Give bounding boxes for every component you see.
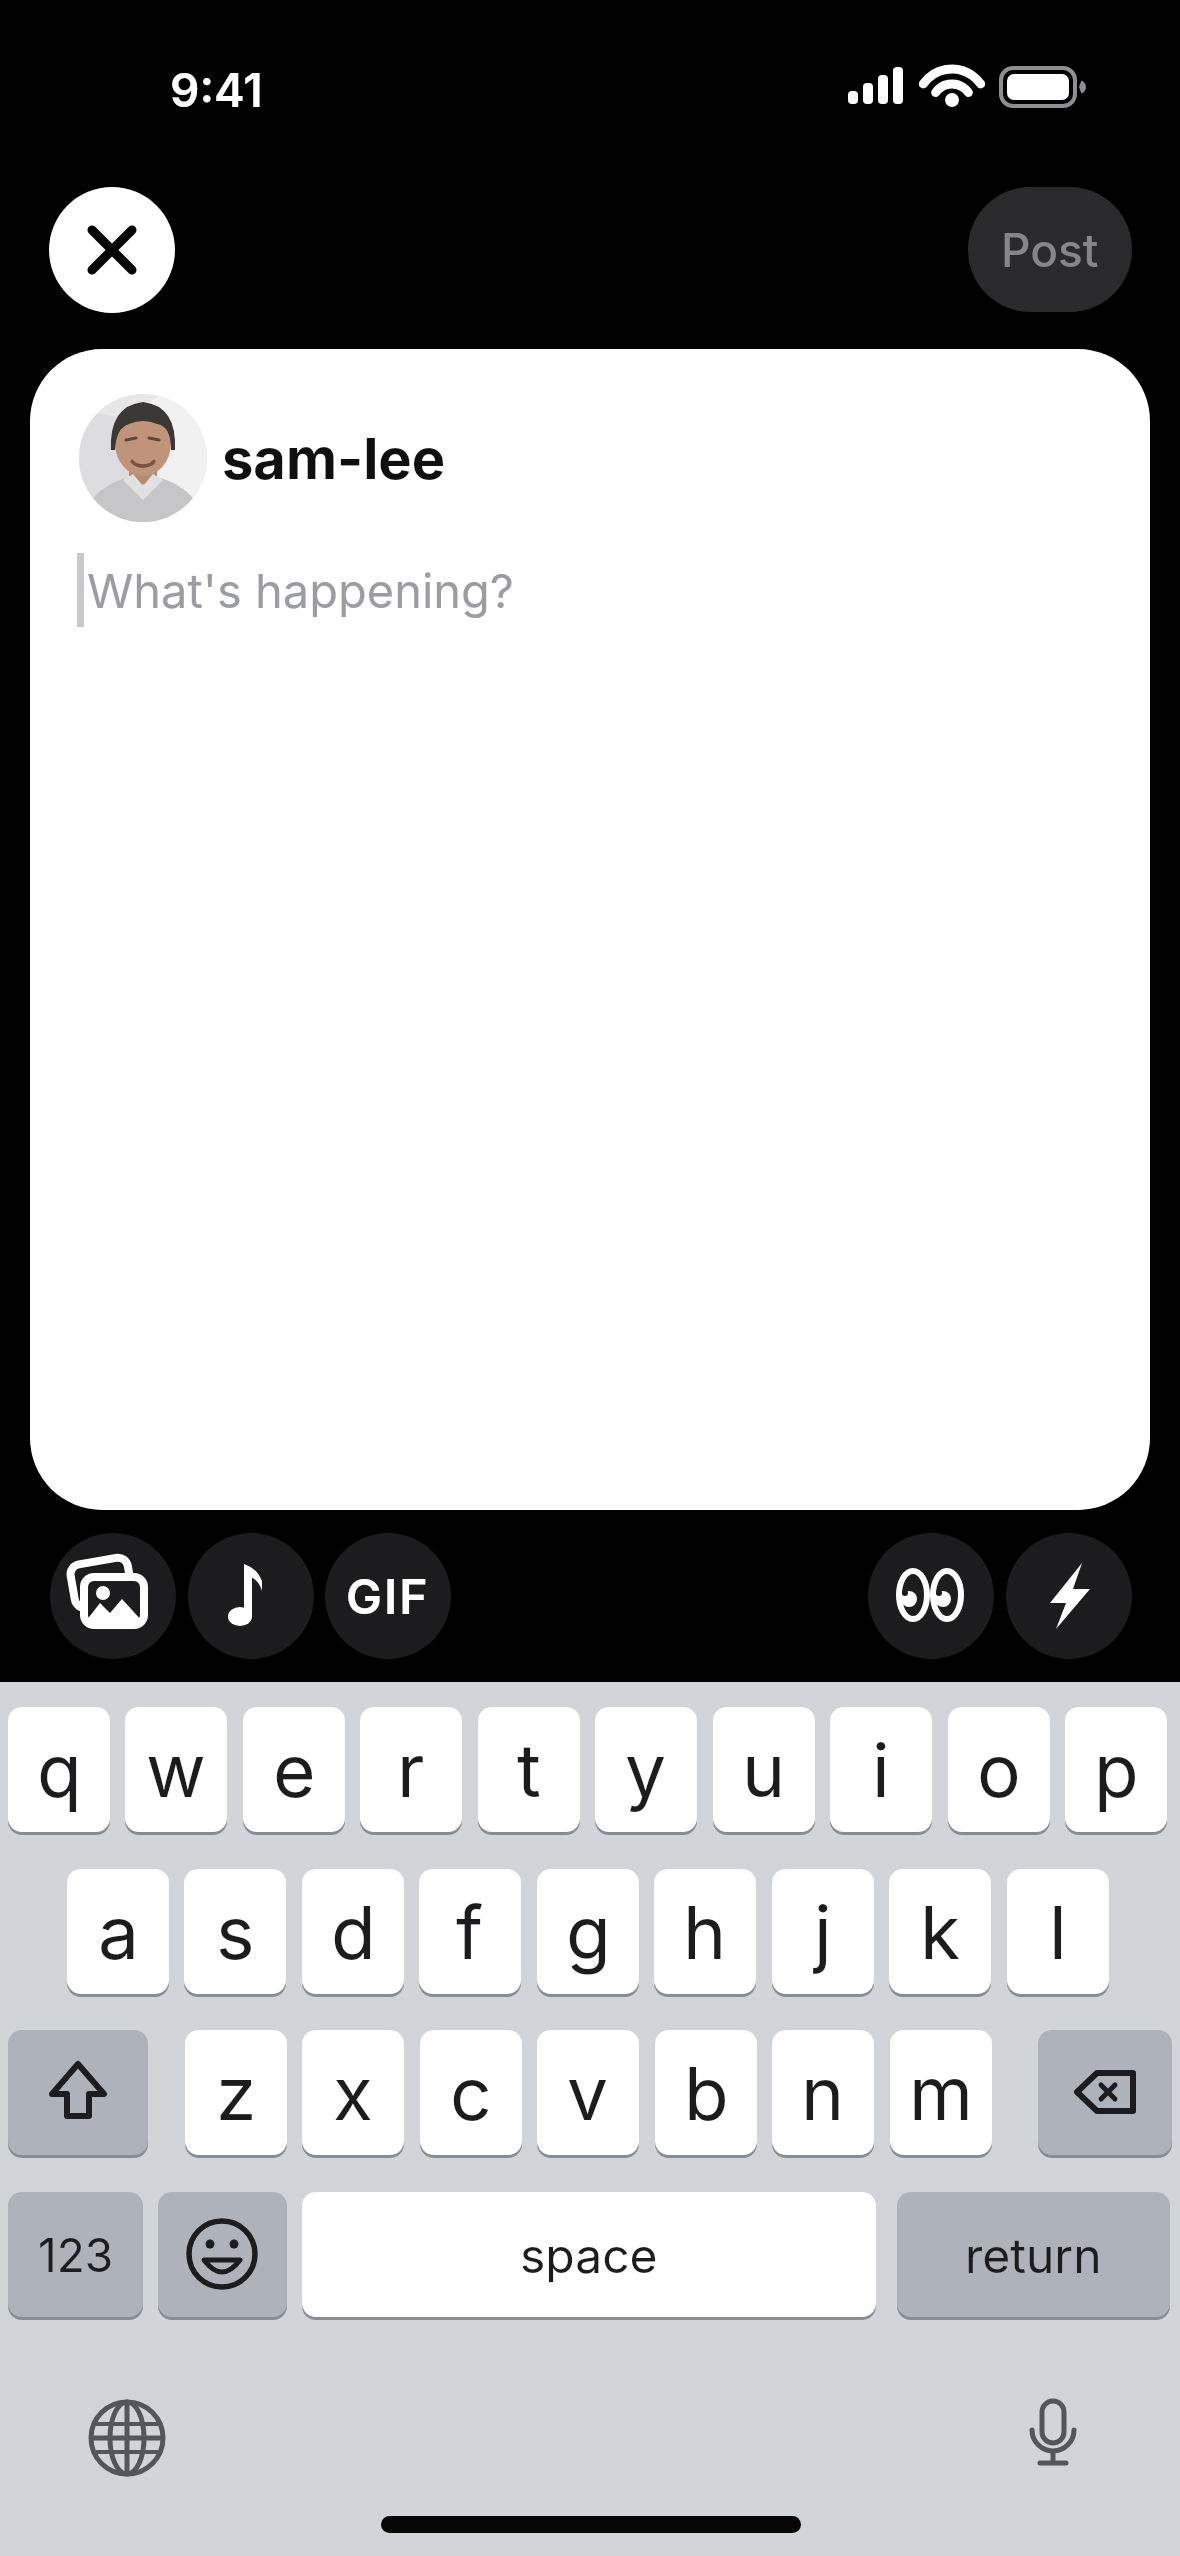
button[interactable]: u [713, 1707, 815, 1832]
staticText: w [146, 1726, 206, 1814]
button[interactable]: GIF [325, 1533, 451, 1659]
staticText: h [683, 1888, 727, 1976]
button[interactable] [1038, 2030, 1172, 2155]
button[interactable]: i [830, 1707, 932, 1832]
button[interactable]: return [897, 2192, 1170, 2317]
staticText: g [566, 1888, 611, 1976]
button[interactable]: z [185, 2030, 287, 2155]
button[interactable]: m [890, 2030, 992, 2155]
staticText: l [1049, 1888, 1067, 1976]
staticText: d [331, 1888, 376, 1976]
button[interactable]: h [654, 1869, 756, 1994]
button[interactable]: l [1007, 1869, 1109, 1994]
button[interactable]: y [595, 1707, 697, 1832]
button[interactable]: b [655, 2030, 757, 2155]
staticText: a [98, 1888, 139, 1976]
staticText: b [684, 2049, 729, 2137]
button[interactable]: j [772, 1869, 874, 1994]
staticText: v [567, 2049, 609, 2137]
button[interactable]: f [419, 1869, 521, 1994]
staticText: r [397, 1726, 425, 1814]
button[interactable]: n [772, 2030, 874, 2155]
button[interactable]: e [243, 1707, 345, 1832]
staticText: s [216, 1888, 255, 1976]
staticText: j [814, 1888, 832, 1976]
staticText: 123 [38, 2227, 114, 2283]
staticText: e [273, 1726, 316, 1814]
button[interactable]: w [125, 1707, 227, 1832]
button[interactable]: a [67, 1869, 169, 1994]
button[interactable] [868, 1533, 994, 1659]
staticText: sam-lee [222, 425, 446, 493]
button[interactable]: Post [968, 187, 1132, 312]
button[interactable] [1013, 2397, 1093, 2477]
staticText: z [216, 2049, 257, 2137]
staticText: return [965, 2226, 1102, 2284]
staticText: What's happening? [87, 562, 514, 619]
staticText: f [456, 1888, 484, 1976]
staticText: 9:41 [170, 62, 263, 118]
button[interactable]: t [478, 1707, 580, 1832]
button[interactable] [50, 1533, 176, 1659]
staticText: GIF [346, 1567, 430, 1625]
button[interactable]: c [420, 2030, 522, 2155]
button[interactable]: d [302, 1869, 404, 1994]
staticText: m [909, 2049, 973, 2137]
staticText: i [872, 1726, 890, 1814]
button[interactable]: x [302, 2030, 404, 2155]
button[interactable]: g [537, 1869, 639, 1994]
staticText: y [625, 1726, 667, 1814]
staticText: Post [1001, 222, 1099, 278]
button[interactable]: space [302, 2192, 876, 2317]
button[interactable]: q [8, 1707, 110, 1832]
staticText: p [1094, 1726, 1139, 1814]
staticText: t [517, 1726, 541, 1814]
staticText: n [801, 2049, 845, 2137]
button[interactable]: o [948, 1707, 1050, 1832]
staticText: o [977, 1726, 1021, 1814]
button[interactable]: p [1065, 1707, 1167, 1832]
button[interactable] [188, 1533, 314, 1659]
staticText: q [37, 1726, 82, 1814]
staticText: space [520, 2226, 658, 2284]
button[interactable]: v [537, 2030, 639, 2155]
button[interactable]: s [184, 1869, 286, 1994]
button[interactable] [158, 2192, 287, 2317]
button[interactable]: 123 [8, 2192, 143, 2317]
button[interactable] [8, 2030, 148, 2155]
staticText: c [450, 2049, 492, 2137]
button[interactable] [1006, 1533, 1132, 1659]
button[interactable] [87, 2398, 167, 2478]
button[interactable]: r [360, 1707, 462, 1832]
staticText: u [742, 1726, 786, 1814]
staticText: x [333, 2049, 373, 2137]
button[interactable]: k [889, 1869, 991, 1994]
staticText: k [920, 1888, 961, 1976]
button[interactable] [49, 187, 175, 313]
